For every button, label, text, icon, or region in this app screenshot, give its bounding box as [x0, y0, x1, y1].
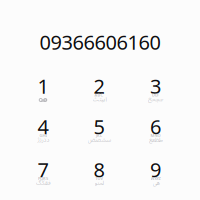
button[interactable]: 2 — [71, 71, 127, 115]
staticText: لمنو — [94, 178, 104, 187]
staticText: طظعغ — [148, 135, 162, 144]
staticText: MNO — [150, 133, 160, 138]
staticText: DEF — [152, 92, 159, 98]
staticText: سشصض — [87, 135, 111, 144]
staticText: PQRS — [38, 176, 48, 181]
button[interactable]: 5 — [71, 111, 127, 155]
button[interactable]: 4 — [15, 111, 71, 155]
staticText: هی — [152, 178, 159, 187]
staticText: فقکگ — [35, 178, 50, 187]
staticText: 3 — [150, 73, 161, 99]
staticText: ابپتث — [92, 95, 106, 103]
button[interactable]: 1 — [15, 71, 71, 115]
staticText: 6 — [150, 113, 161, 140]
staticText: 5 — [93, 113, 104, 140]
staticText: 4 — [37, 113, 48, 140]
button[interactable]: 3 — [127, 71, 183, 115]
staticText: WXYZ — [150, 176, 160, 181]
staticText: GHI — [39, 133, 46, 138]
button[interactable]: 9 — [127, 154, 183, 198]
button[interactable]: 6 — [127, 111, 183, 155]
staticText: 8 — [93, 156, 104, 183]
staticText: دذرزژ — [37, 135, 49, 144]
staticText: JKL — [96, 133, 102, 138]
staticText: 7 — [37, 156, 48, 183]
staticText: 1 — [37, 73, 48, 99]
staticText: TUV — [95, 176, 102, 181]
staticText: 9 — [150, 156, 161, 183]
button[interactable]: 8 — [71, 154, 127, 198]
staticText: 09366606160 — [39, 29, 160, 55]
button[interactable]: 7 — [15, 154, 71, 198]
staticText: ABC — [94, 92, 103, 98]
staticText: جچحخ — [147, 95, 163, 103]
staticText: 2 — [93, 73, 104, 99]
